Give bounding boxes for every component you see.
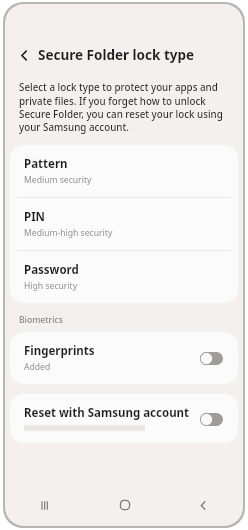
staticText: Medium security xyxy=(24,174,92,186)
staticText: PIN xyxy=(24,209,45,225)
button[interactable]: Fingerprints xyxy=(10,332,238,384)
staticText: High security xyxy=(24,280,78,292)
staticText: Fingerprints xyxy=(24,343,95,359)
staticText: Added xyxy=(24,361,51,373)
button[interactable]: Back xyxy=(164,488,243,522)
button[interactable]: Reset with Samsung account xyxy=(10,394,238,443)
staticText: Biometrics xyxy=(19,314,63,326)
button[interactable]: Toggle xyxy=(200,349,226,367)
staticText: Select a lock type to protect your apps … xyxy=(19,81,231,133)
button[interactable]: Pattern xyxy=(10,145,238,197)
staticText: Password xyxy=(24,262,79,278)
staticText: Pattern xyxy=(24,156,68,172)
staticText: Secure Folder lock type xyxy=(38,46,195,64)
button[interactable]: Toggle xyxy=(200,410,226,428)
button[interactable]: Password xyxy=(10,251,238,303)
staticText: Medium-high security xyxy=(24,227,113,239)
button[interactable]: Home xyxy=(85,488,164,522)
button[interactable]: PIN xyxy=(10,198,238,250)
button[interactable]: Recents xyxy=(5,488,85,522)
button[interactable]: Back xyxy=(14,45,34,65)
staticText: Reset with Samsung account xyxy=(24,405,190,421)
